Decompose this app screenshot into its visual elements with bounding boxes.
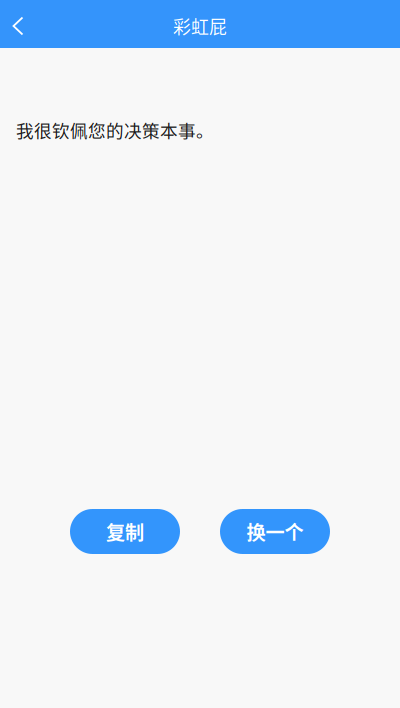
button[interactable]: Back (0, 0, 36, 48)
staticText: 换一个 (246, 518, 303, 545)
button[interactable]: 复制 (70, 509, 180, 554)
staticText: 彩虹屁 (173, 13, 227, 39)
button[interactable]: 换一个 (220, 509, 330, 554)
staticText: 复制 (106, 518, 144, 545)
staticText: 我很钦佩您的决策本事。 (16, 117, 214, 142)
